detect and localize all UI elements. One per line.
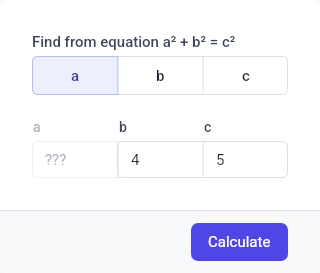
staticText: a bbox=[33, 119, 41, 135]
button[interactable]: ??? bbox=[32, 141, 118, 178]
button[interactable]: 4 bbox=[118, 141, 203, 178]
staticText: 4 bbox=[131, 151, 140, 169]
staticText: c bbox=[242, 67, 250, 85]
staticText: 5 bbox=[216, 151, 225, 169]
staticText: b bbox=[119, 119, 127, 135]
staticText: Calculate bbox=[208, 233, 271, 251]
button[interactable]: c bbox=[203, 56, 288, 95]
button[interactable]: b bbox=[118, 56, 203, 95]
staticText: a bbox=[71, 67, 80, 85]
staticText: c bbox=[204, 119, 212, 135]
button[interactable]: 5 bbox=[203, 141, 288, 178]
button[interactable]: Calculate bbox=[191, 223, 288, 261]
button[interactable]: a bbox=[32, 56, 118, 95]
staticText: Find from equation a² + b² = c² bbox=[32, 33, 236, 51]
staticText: b bbox=[156, 67, 165, 85]
staticText: ??? bbox=[45, 151, 67, 169]
